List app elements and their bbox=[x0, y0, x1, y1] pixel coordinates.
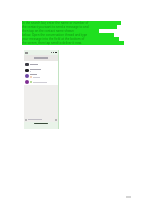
staticText: your message into the field at the botto… bbox=[22, 37, 85, 41]
button[interactable] bbox=[24, 79, 58, 85]
staticText: the screen, then tap send to deliver it … bbox=[22, 41, 82, 45]
staticText: then tap on the contact name shown bbox=[22, 29, 74, 33]
button[interactable] bbox=[24, 73, 58, 79]
staticText: In the search bar, enter the name or num… bbox=[22, 21, 89, 25]
staticText: the contact you want to send a message t… bbox=[22, 25, 89, 29]
staticText: below. Open the conversation thread and … bbox=[22, 33, 88, 37]
button[interactable] bbox=[24, 67, 58, 73]
button[interactable]: Search bbox=[24, 55, 58, 61]
button[interactable] bbox=[24, 61, 58, 67]
